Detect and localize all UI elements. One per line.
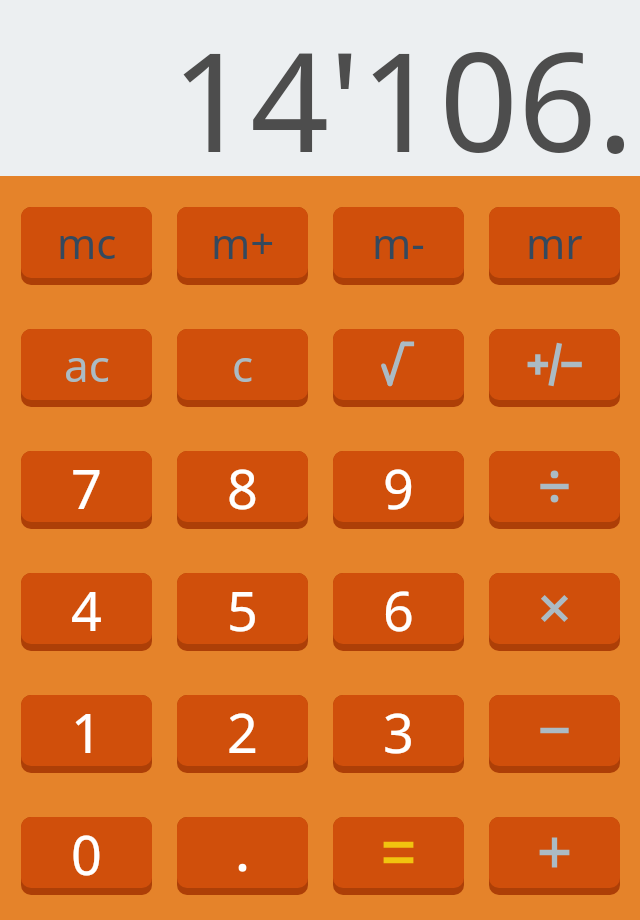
button[interactable]: mc <box>21 207 152 285</box>
button[interactable]: Plus minus <box>489 329 620 407</box>
staticText: m- <box>372 214 425 271</box>
button[interactable]: Plus <box>489 817 620 895</box>
button[interactable]: Minus <box>489 695 620 773</box>
button[interactable]: 4 <box>21 573 152 651</box>
button[interactable]: 6 <box>333 573 464 651</box>
button[interactable]: 5 <box>177 573 308 651</box>
button[interactable]: ac <box>21 329 152 407</box>
staticText: 6 <box>383 573 414 644</box>
button[interactable]: 2 <box>177 695 308 773</box>
staticText: 1 <box>71 695 102 766</box>
staticText: 2 <box>227 695 258 766</box>
staticText: 5 <box>227 573 258 644</box>
staticText: 14'106. <box>171 4 634 180</box>
button[interactable]: Divide <box>489 451 620 529</box>
staticText: 7 <box>71 451 102 522</box>
staticText: 0 <box>71 817 102 888</box>
button[interactable]: mr <box>489 207 620 285</box>
button[interactable]: 0 <box>21 817 152 895</box>
button[interactable]: m- <box>333 207 464 285</box>
staticText: 9 <box>383 451 414 522</box>
staticText: 4 <box>71 573 102 644</box>
staticText: 3 <box>383 695 414 766</box>
staticText: mc <box>57 214 117 271</box>
staticText: mr <box>526 214 583 271</box>
button[interactable]: Decimal point <box>177 817 308 895</box>
staticText: ac <box>64 335 110 395</box>
button[interactable]: Equals <box>333 817 464 895</box>
button[interactable]: m+ <box>177 207 308 285</box>
staticText: c <box>232 335 254 395</box>
button[interactable]: Square root <box>333 329 464 407</box>
button[interactable]: 9 <box>333 451 464 529</box>
button[interactable]: 3 <box>333 695 464 773</box>
staticText: 8 <box>227 451 258 522</box>
button[interactable]: c <box>177 329 308 407</box>
button[interactable]: Multiply <box>489 573 620 651</box>
button[interactable]: 8 <box>177 451 308 529</box>
button[interactable]: 7 <box>21 451 152 529</box>
button[interactable]: 1 <box>21 695 152 773</box>
staticText: m+ <box>211 214 275 271</box>
